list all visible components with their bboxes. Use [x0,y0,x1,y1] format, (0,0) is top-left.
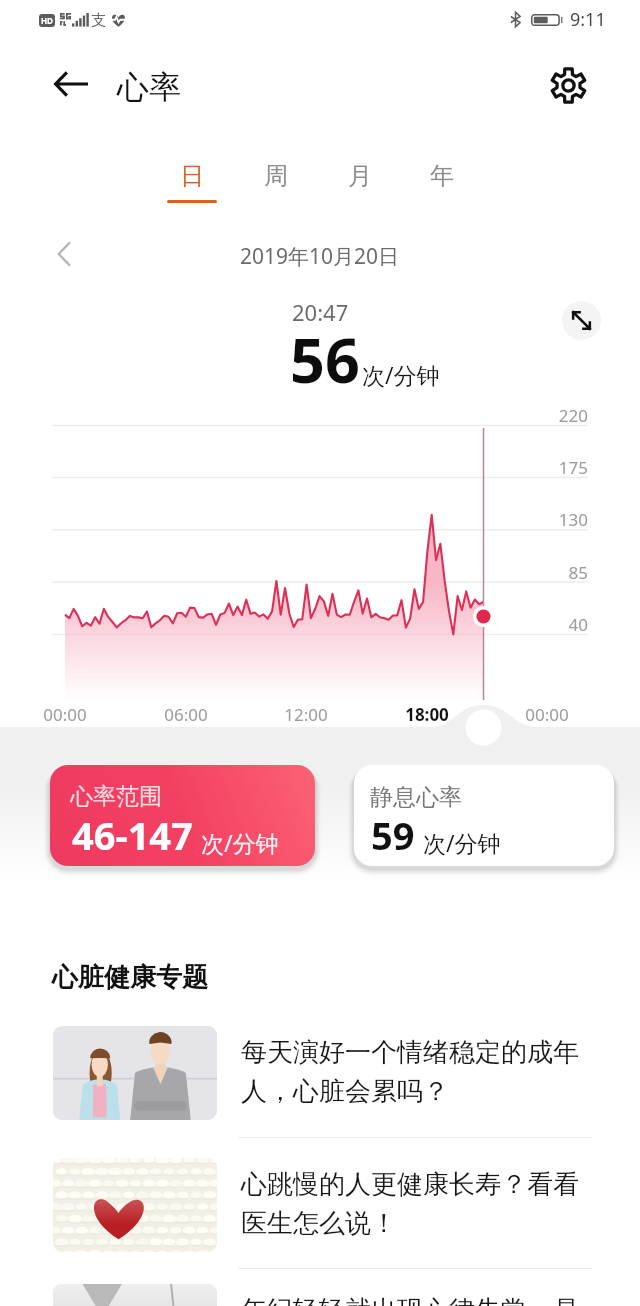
button[interactable]: 年 [408,161,476,213]
staticText: 175 [558,456,588,479]
staticText: 次/分钟 [362,359,440,390]
staticText: 心率范围 [70,782,162,811]
staticText: 00:00 [525,703,569,726]
staticText: 心率 [117,67,181,107]
button[interactable]: Full screen [562,301,601,340]
staticText: 心跳慢的人更健康长寿？看看医生怎么说！ [241,1168,593,1239]
staticText: 00:00 [43,703,87,726]
button[interactable]: 周 [242,161,310,213]
button[interactable] [26,1010,614,1136]
staticText: 59 [371,809,415,861]
staticText: 月 [348,161,372,191]
button[interactable] [26,1142,614,1268]
button[interactable]: Back [47,60,95,108]
button[interactable]: Previous day [42,232,86,276]
staticText: 心脏健康专题 [52,961,208,994]
staticText: 每天演好一个情绪稳定的成年人，心脏会累吗？ [241,1036,593,1107]
staticText: 周 [264,161,288,191]
staticText: HD [41,15,53,26]
staticText: 日 [180,161,204,191]
staticText: 年纪轻轻就出现心律失常，是什么原因？ [241,1294,593,1306]
staticText: 20:47 [292,297,349,327]
staticText: 次/分钟 [423,827,501,858]
staticText: 支 [91,11,106,30]
button[interactable]: 日 [158,161,226,213]
staticText: 年 [430,161,454,191]
staticText: 9:11 [570,7,606,32]
button[interactable]: 心率范围 [50,765,315,866]
staticText: 85 [568,561,588,584]
staticText: 12:00 [284,703,328,726]
staticText: 130 [558,508,588,531]
staticText: 40 [568,613,588,636]
staticText: 56 [290,318,360,401]
button[interactable]: 月 [326,161,394,213]
staticText: 次/分钟 [201,827,279,858]
button[interactable] [26,1268,614,1306]
staticText: 静息心率 [370,783,462,812]
staticText: 2019年10月20日 [240,242,400,271]
staticText: 18:00 [405,703,449,726]
button[interactable]: 静息心率 [354,765,614,866]
staticText: 46-147 [72,809,193,861]
button[interactable]: Settings [543,60,593,110]
staticText: 220 [558,404,588,427]
staticText: 06:00 [164,703,208,726]
